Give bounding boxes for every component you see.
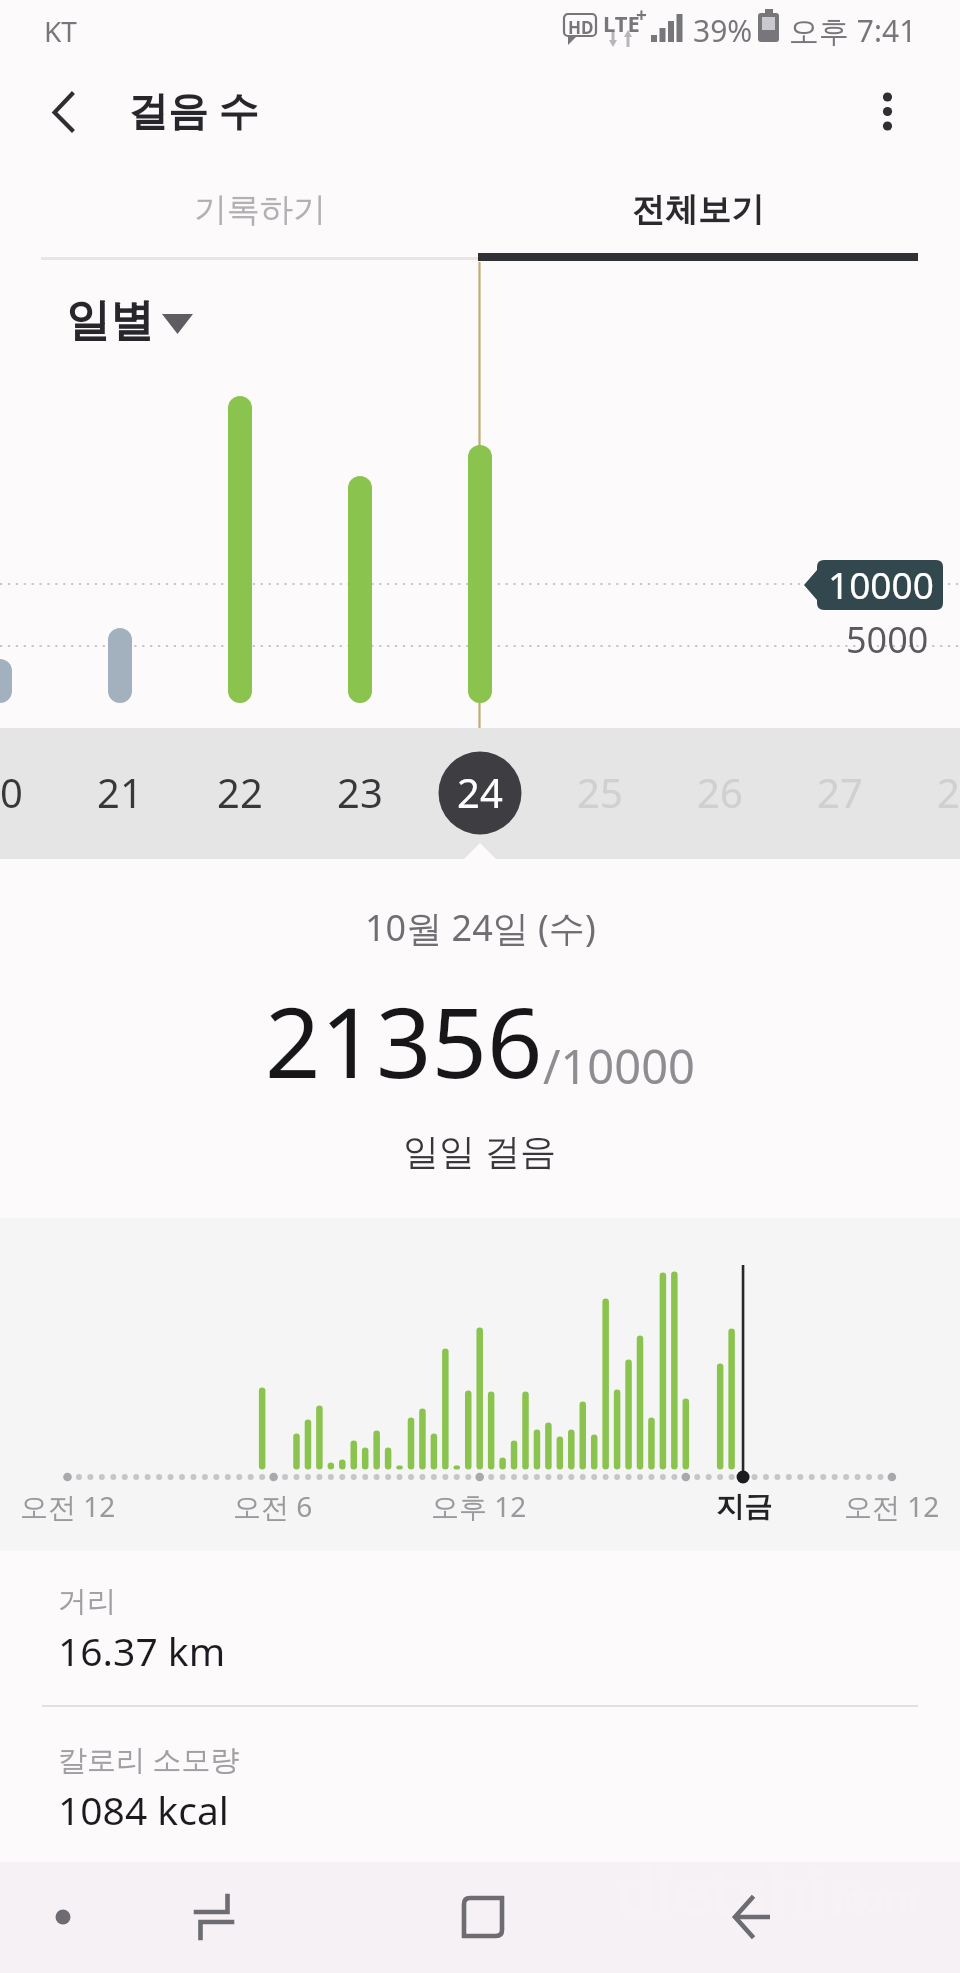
staticText: 일일 걸음 (403, 1126, 557, 1175)
staticText: 28 (937, 765, 960, 819)
staticText: HD (568, 16, 594, 39)
button[interactable]: Home (480, 1862, 720, 1973)
staticText: 26 (697, 765, 743, 819)
button[interactable]: 20 (0, 728, 60, 858)
button[interactable]: 전체보기 (478, 170, 918, 256)
staticText: /10000 (543, 1034, 695, 1098)
staticText: 칼로리 소모량 (58, 1739, 240, 1779)
staticText: 24 (457, 765, 503, 819)
staticText: KT (44, 12, 77, 50)
staticText: 21 (97, 765, 143, 819)
staticText: 27 (817, 765, 863, 819)
staticText: 21356 (265, 974, 543, 1106)
button[interactable]: 21 (60, 728, 180, 858)
button[interactable]: 24 (420, 728, 540, 858)
button[interactable]: 일별 (66, 293, 185, 348)
staticText: 1084 kcal (58, 1783, 229, 1836)
button[interactable]: More options (857, 60, 919, 170)
staticText: 오전 6 (233, 1487, 313, 1525)
button[interactable]: 칼로리 소모량 (0, 1707, 960, 1862)
staticText: 전체보기 (632, 189, 764, 231)
button[interactable]: Back (720, 1862, 960, 1973)
staticText: LTE (603, 8, 640, 38)
button[interactable]: 23 (300, 728, 420, 858)
button[interactable]: 26 (660, 728, 780, 858)
staticText: 거리 (58, 1583, 116, 1620)
staticText: 오전 12 (20, 1487, 116, 1525)
staticText: 지금 (716, 1489, 772, 1524)
button[interactable]: Back (24, 60, 104, 170)
staticText: 일별 (66, 293, 154, 348)
staticText: 오전 12 (844, 1487, 940, 1525)
staticText: dietshin (616, 1848, 868, 1932)
button[interactable]: Assistant (0, 1862, 240, 1973)
staticText: 39% (693, 10, 753, 51)
button[interactable]: 기록하기 (41, 170, 478, 256)
staticText: 23 (337, 765, 383, 819)
staticText: 걸음 수 (128, 82, 259, 137)
staticText: 오후 12 (431, 1487, 527, 1525)
staticText: 16.37 km (58, 1624, 226, 1677)
button[interactable]: 22 (180, 728, 300, 858)
button[interactable]: 거리 (0, 1551, 960, 1705)
staticText: 10월 24일 (수) (365, 903, 596, 952)
button[interactable]: 27 (780, 728, 900, 858)
staticText: 10000 (828, 559, 934, 609)
staticText: 오후 7:41 (789, 10, 917, 51)
button[interactable]: 28 (900, 728, 960, 858)
staticText: + (636, 2, 647, 28)
staticText: 기록하기 (194, 189, 326, 231)
button[interactable]: Recent apps (240, 1862, 480, 1973)
staticText: 22 (217, 765, 263, 819)
staticText: 20 (0, 765, 23, 819)
staticText: 5000 (846, 615, 929, 664)
staticText: 25 (577, 765, 623, 819)
button[interactable]: 25 (540, 728, 660, 858)
